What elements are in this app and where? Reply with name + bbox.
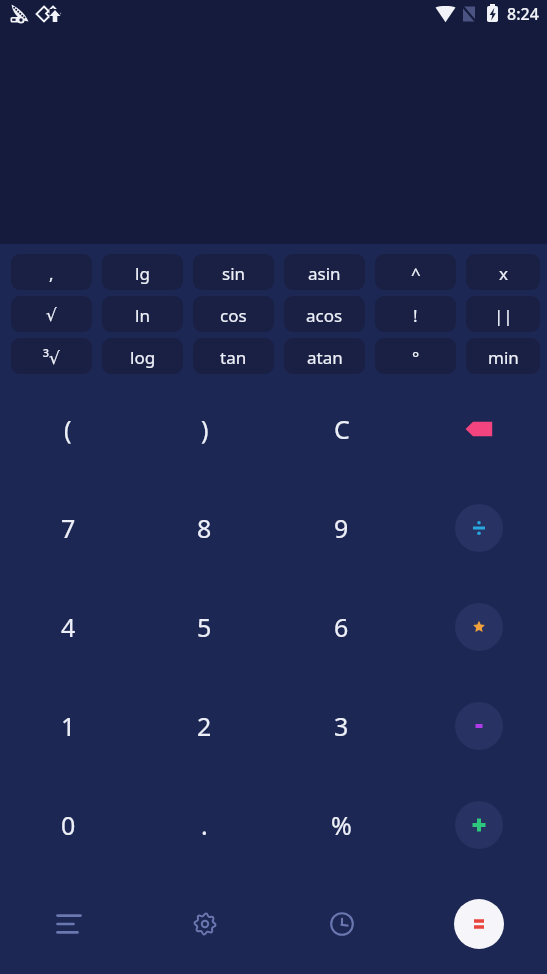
staticText: sin [222,262,246,285]
button[interactable]: History [273,874,410,973]
button[interactable]: . [136,775,273,874]
staticText: 2 [197,709,212,743]
button[interactable]: 2 [136,676,273,775]
staticText: || [494,304,513,327]
staticText: 5 [197,610,212,644]
staticText: ^ [411,262,421,285]
staticText: 8 [197,511,212,545]
staticText: 3 [334,709,349,743]
staticText: 4 [61,610,76,644]
staticText: min [488,346,519,369]
button[interactable]: Multiply [410,577,547,676]
staticText: x [499,262,508,285]
button[interactable]: C [273,379,410,478]
button[interactable]: Subtract [410,676,547,775]
staticText: % [331,808,352,842]
staticText: 7 [61,511,76,545]
button[interactable]: Multiply [455,603,503,651]
button[interactable]: 1 [0,676,136,775]
button[interactable]: , [11,254,92,290]
button[interactable]: cos [193,296,274,332]
staticText: acos [306,304,343,327]
button[interactable]: log [102,338,183,374]
button[interactable]: asin [284,254,365,290]
button[interactable]: Divide [410,478,547,577]
button[interactable]: 6 [273,577,410,676]
button[interactable]: tan [193,338,274,374]
button[interactable]: 9 [273,478,410,577]
button[interactable]: || [466,296,540,332]
button[interactable]: ° [375,338,456,374]
button[interactable]: √ [11,296,92,332]
button[interactable]: Backspace [410,379,547,478]
staticText: ³√ [43,346,60,369]
button[interactable]: Settings [136,874,273,973]
button[interactable]: 4 [0,577,136,676]
button[interactable]: ^ [375,254,456,290]
staticText: ! [413,304,418,327]
staticText: √ [46,305,57,325]
button[interactable]: Divide [455,504,503,552]
staticText: 0 [61,808,76,842]
button[interactable]: ) [136,379,273,478]
button[interactable]: 3 [273,676,410,775]
staticText: log [130,346,156,369]
staticText: lg [135,262,150,285]
button[interactable]: lg [102,254,183,290]
button[interactable]: acos [284,296,365,332]
button[interactable]: Equals [454,899,504,949]
staticText: 1 [61,709,76,743]
staticText: . [201,808,208,842]
button[interactable]: History list [0,874,136,973]
button[interactable]: 5 [136,577,273,676]
button[interactable]: x [466,254,540,290]
button[interactable]: 0 [0,775,136,874]
button[interactable]: Subtract [455,702,503,750]
button[interactable]: ln [102,296,183,332]
button[interactable]: sin [193,254,274,290]
other: Backspace [465,415,493,443]
button[interactable]: % [273,775,410,874]
staticText: tan [220,346,247,369]
button[interactable]: Add [410,775,547,874]
staticText: ln [135,304,150,327]
staticText: ° [412,346,420,369]
staticText: , [49,262,54,285]
staticText: ( [64,412,72,446]
button[interactable]: Add [455,801,503,849]
button[interactable]: ( [0,379,136,478]
staticText: cos [220,304,247,327]
button[interactable]: 7 [0,478,136,577]
staticText: 9 [334,511,349,545]
button[interactable]: ³√ [11,338,92,374]
staticText: 6 [334,610,349,644]
staticText: asin [308,262,341,285]
button[interactable]: 8 [136,478,273,577]
staticText: atan [307,346,343,369]
button[interactable]: ! [375,296,456,332]
button[interactable]: min [466,338,540,374]
button[interactable]: atan [284,338,365,374]
staticText: C [334,412,350,446]
staticText: ) [201,412,209,446]
staticText: 8:24 [507,3,539,25]
